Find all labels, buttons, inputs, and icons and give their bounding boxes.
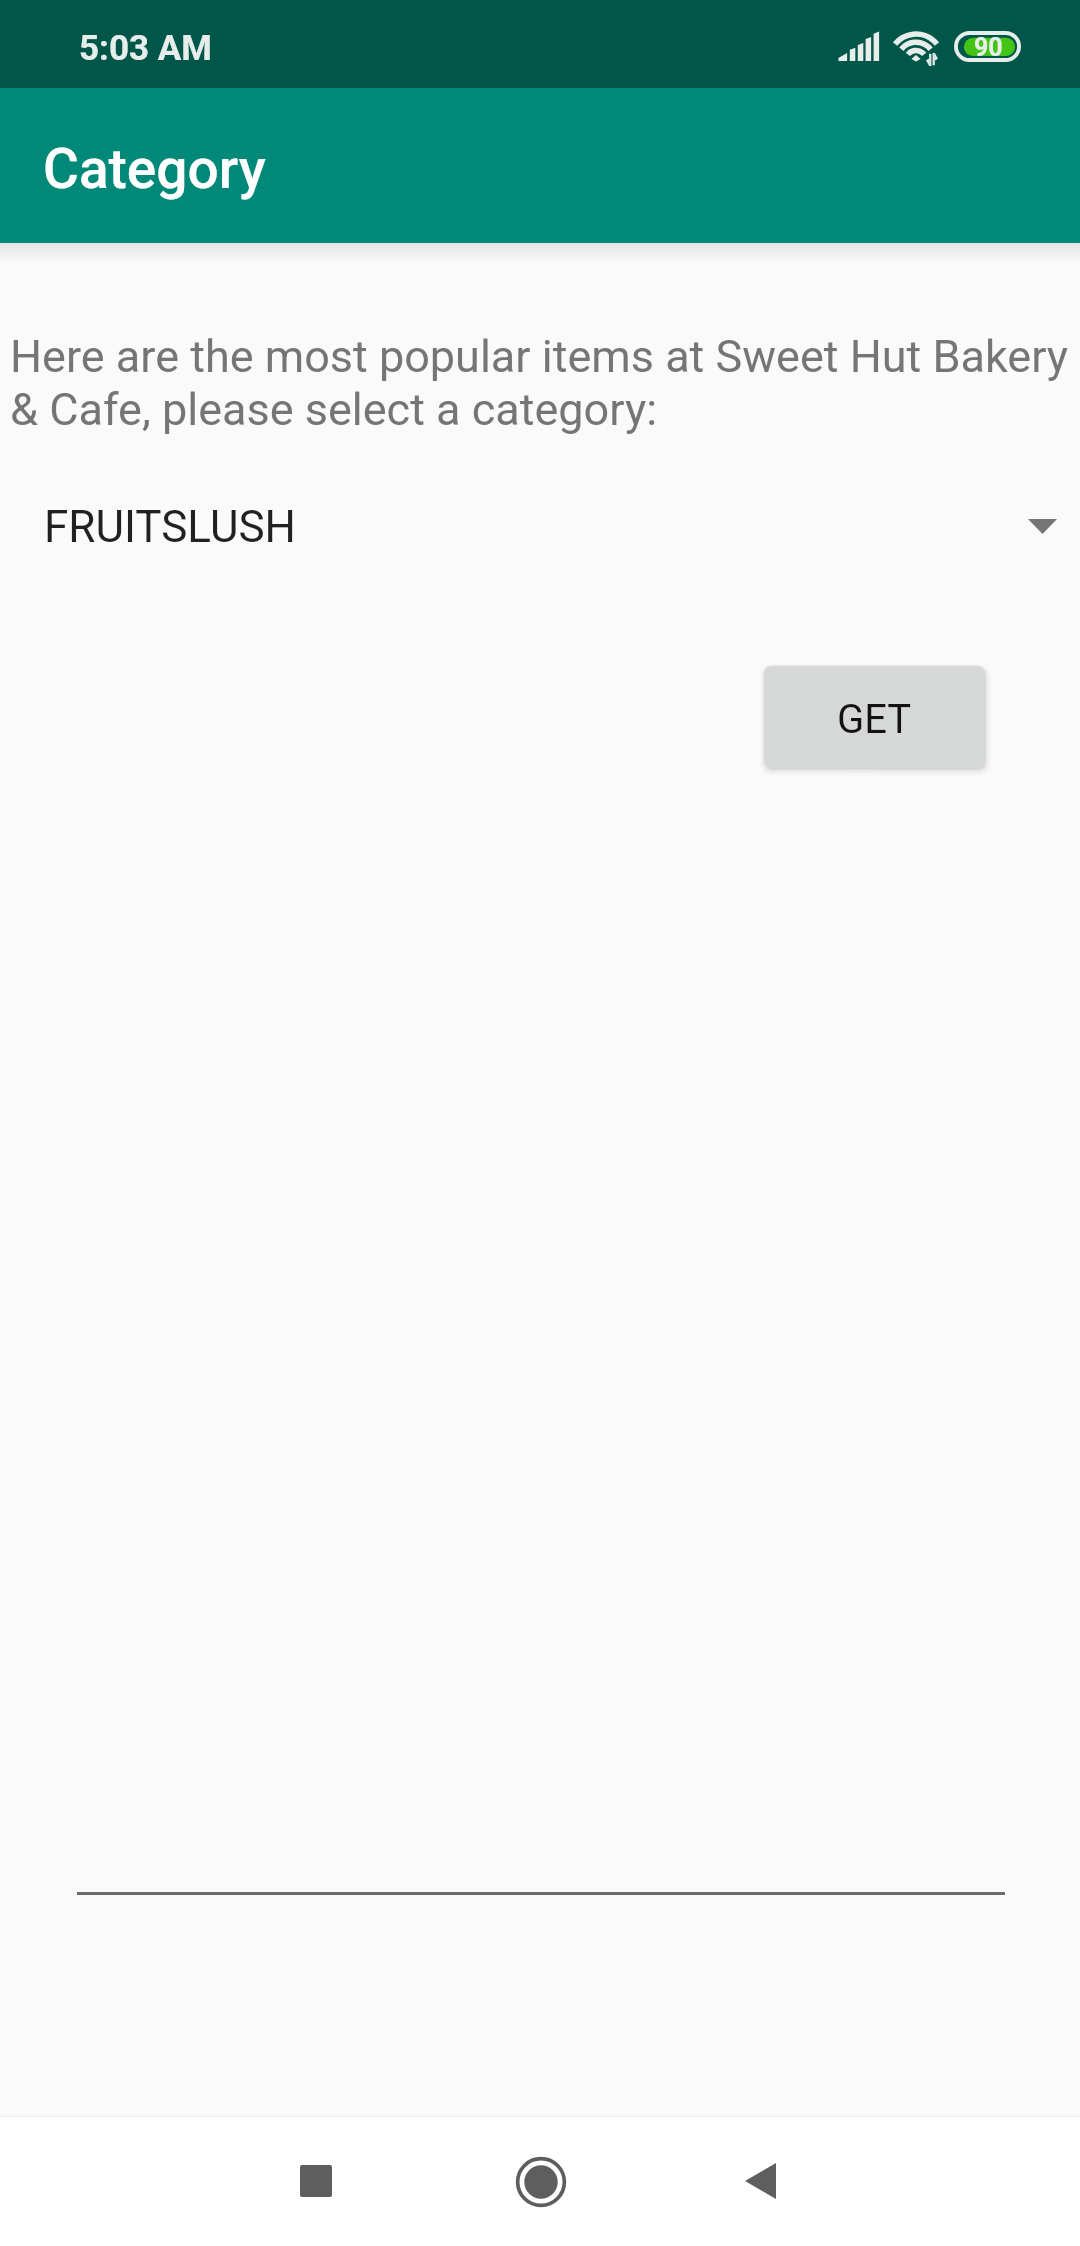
- button[interactable]: Recent apps: [261, 2126, 371, 2236]
- staticText: 5:03 AM: [79, 28, 212, 69]
- button[interactable]: Back: [705, 2126, 815, 2236]
- staticText: FRUITSLUSH: [44, 501, 296, 553]
- button[interactable]: Home: [486, 2127, 596, 2237]
- staticText: 90: [974, 33, 1003, 62]
- button[interactable]: GET: [764, 666, 985, 768]
- staticText: Here are the most popular items at Sweet…: [10, 330, 1070, 436]
- button[interactable]: FRUITSLUSH: [0, 478, 1080, 574]
- staticText: GET: [837, 696, 912, 743]
- staticText: Category: [43, 137, 266, 201]
